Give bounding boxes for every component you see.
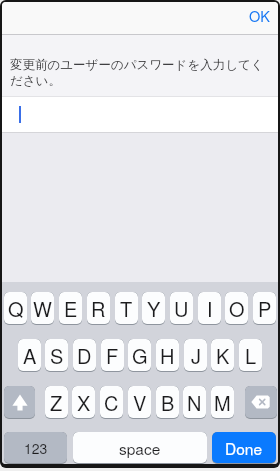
button[interactable]: B bbox=[156, 386, 179, 419]
button[interactable]: U bbox=[170, 292, 193, 325]
button[interactable]: Done bbox=[212, 432, 276, 464]
button[interactable]: V bbox=[128, 386, 151, 419]
button[interactable]: P bbox=[253, 292, 276, 325]
staticText: X bbox=[77, 388, 91, 417]
button[interactable]: R bbox=[87, 292, 110, 325]
staticText: H bbox=[160, 341, 175, 370]
staticText: T bbox=[120, 294, 133, 323]
button[interactable]: Q bbox=[4, 292, 27, 325]
staticText: V bbox=[133, 388, 147, 417]
staticText: O bbox=[229, 294, 245, 323]
staticText: ださい。 bbox=[10, 73, 61, 89]
button[interactable]: Z bbox=[45, 386, 68, 419]
staticText: Y bbox=[147, 294, 161, 323]
button[interactable]: X bbox=[72, 386, 95, 419]
staticText: 変更前のユーザーのパスワードを入力してく bbox=[10, 57, 264, 73]
staticText: D bbox=[77, 341, 92, 370]
button[interactable]: M bbox=[211, 386, 234, 419]
button[interactable]: S bbox=[45, 339, 68, 372]
staticText: M bbox=[214, 388, 231, 417]
button[interactable]: O bbox=[225, 292, 248, 325]
staticText: Done bbox=[225, 437, 263, 459]
button[interactable] bbox=[2, 97, 278, 132]
button[interactable]: Y bbox=[142, 292, 165, 325]
staticText: F bbox=[106, 341, 119, 370]
button[interactable]: N bbox=[183, 386, 206, 419]
button[interactable]: C bbox=[100, 386, 123, 419]
button[interactable]: K bbox=[211, 339, 234, 372]
button[interactable]: F bbox=[101, 339, 124, 372]
staticText: G bbox=[132, 341, 148, 370]
staticText: N bbox=[187, 388, 202, 417]
button[interactable]: A bbox=[18, 339, 41, 372]
button[interactable]: J bbox=[184, 339, 207, 372]
button[interactable]: W bbox=[31, 292, 54, 325]
button[interactable]: space bbox=[73, 432, 207, 464]
staticText: Q bbox=[8, 294, 24, 323]
button[interactable]: D bbox=[73, 339, 96, 372]
button[interactable]: T bbox=[115, 292, 138, 325]
staticText: S bbox=[50, 341, 64, 370]
staticText: A bbox=[23, 341, 37, 370]
button[interactable]: L bbox=[239, 339, 262, 372]
staticText: P bbox=[258, 294, 272, 323]
staticText: R bbox=[91, 294, 106, 323]
staticText: B bbox=[161, 388, 175, 417]
staticText: L bbox=[245, 341, 257, 370]
staticText: Z bbox=[50, 388, 63, 417]
staticText: W bbox=[33, 294, 52, 323]
button[interactable]: H bbox=[156, 339, 179, 372]
staticText: C bbox=[104, 388, 119, 417]
staticText: I bbox=[207, 294, 213, 323]
button[interactable]: E bbox=[59, 292, 82, 325]
button[interactable]: 123 bbox=[4, 432, 67, 464]
staticText: U bbox=[174, 294, 189, 323]
button[interactable] bbox=[4, 386, 35, 419]
staticText: K bbox=[216, 341, 230, 370]
button[interactable] bbox=[245, 386, 277, 419]
button[interactable]: G bbox=[128, 339, 151, 372]
staticText: space bbox=[119, 437, 161, 459]
button[interactable]: OK bbox=[249, 5, 270, 26]
staticText: E bbox=[64, 294, 78, 323]
staticText: OK bbox=[249, 5, 270, 26]
staticText: 123 bbox=[24, 438, 48, 458]
staticText: J bbox=[191, 341, 201, 370]
button[interactable]: I bbox=[198, 292, 221, 325]
